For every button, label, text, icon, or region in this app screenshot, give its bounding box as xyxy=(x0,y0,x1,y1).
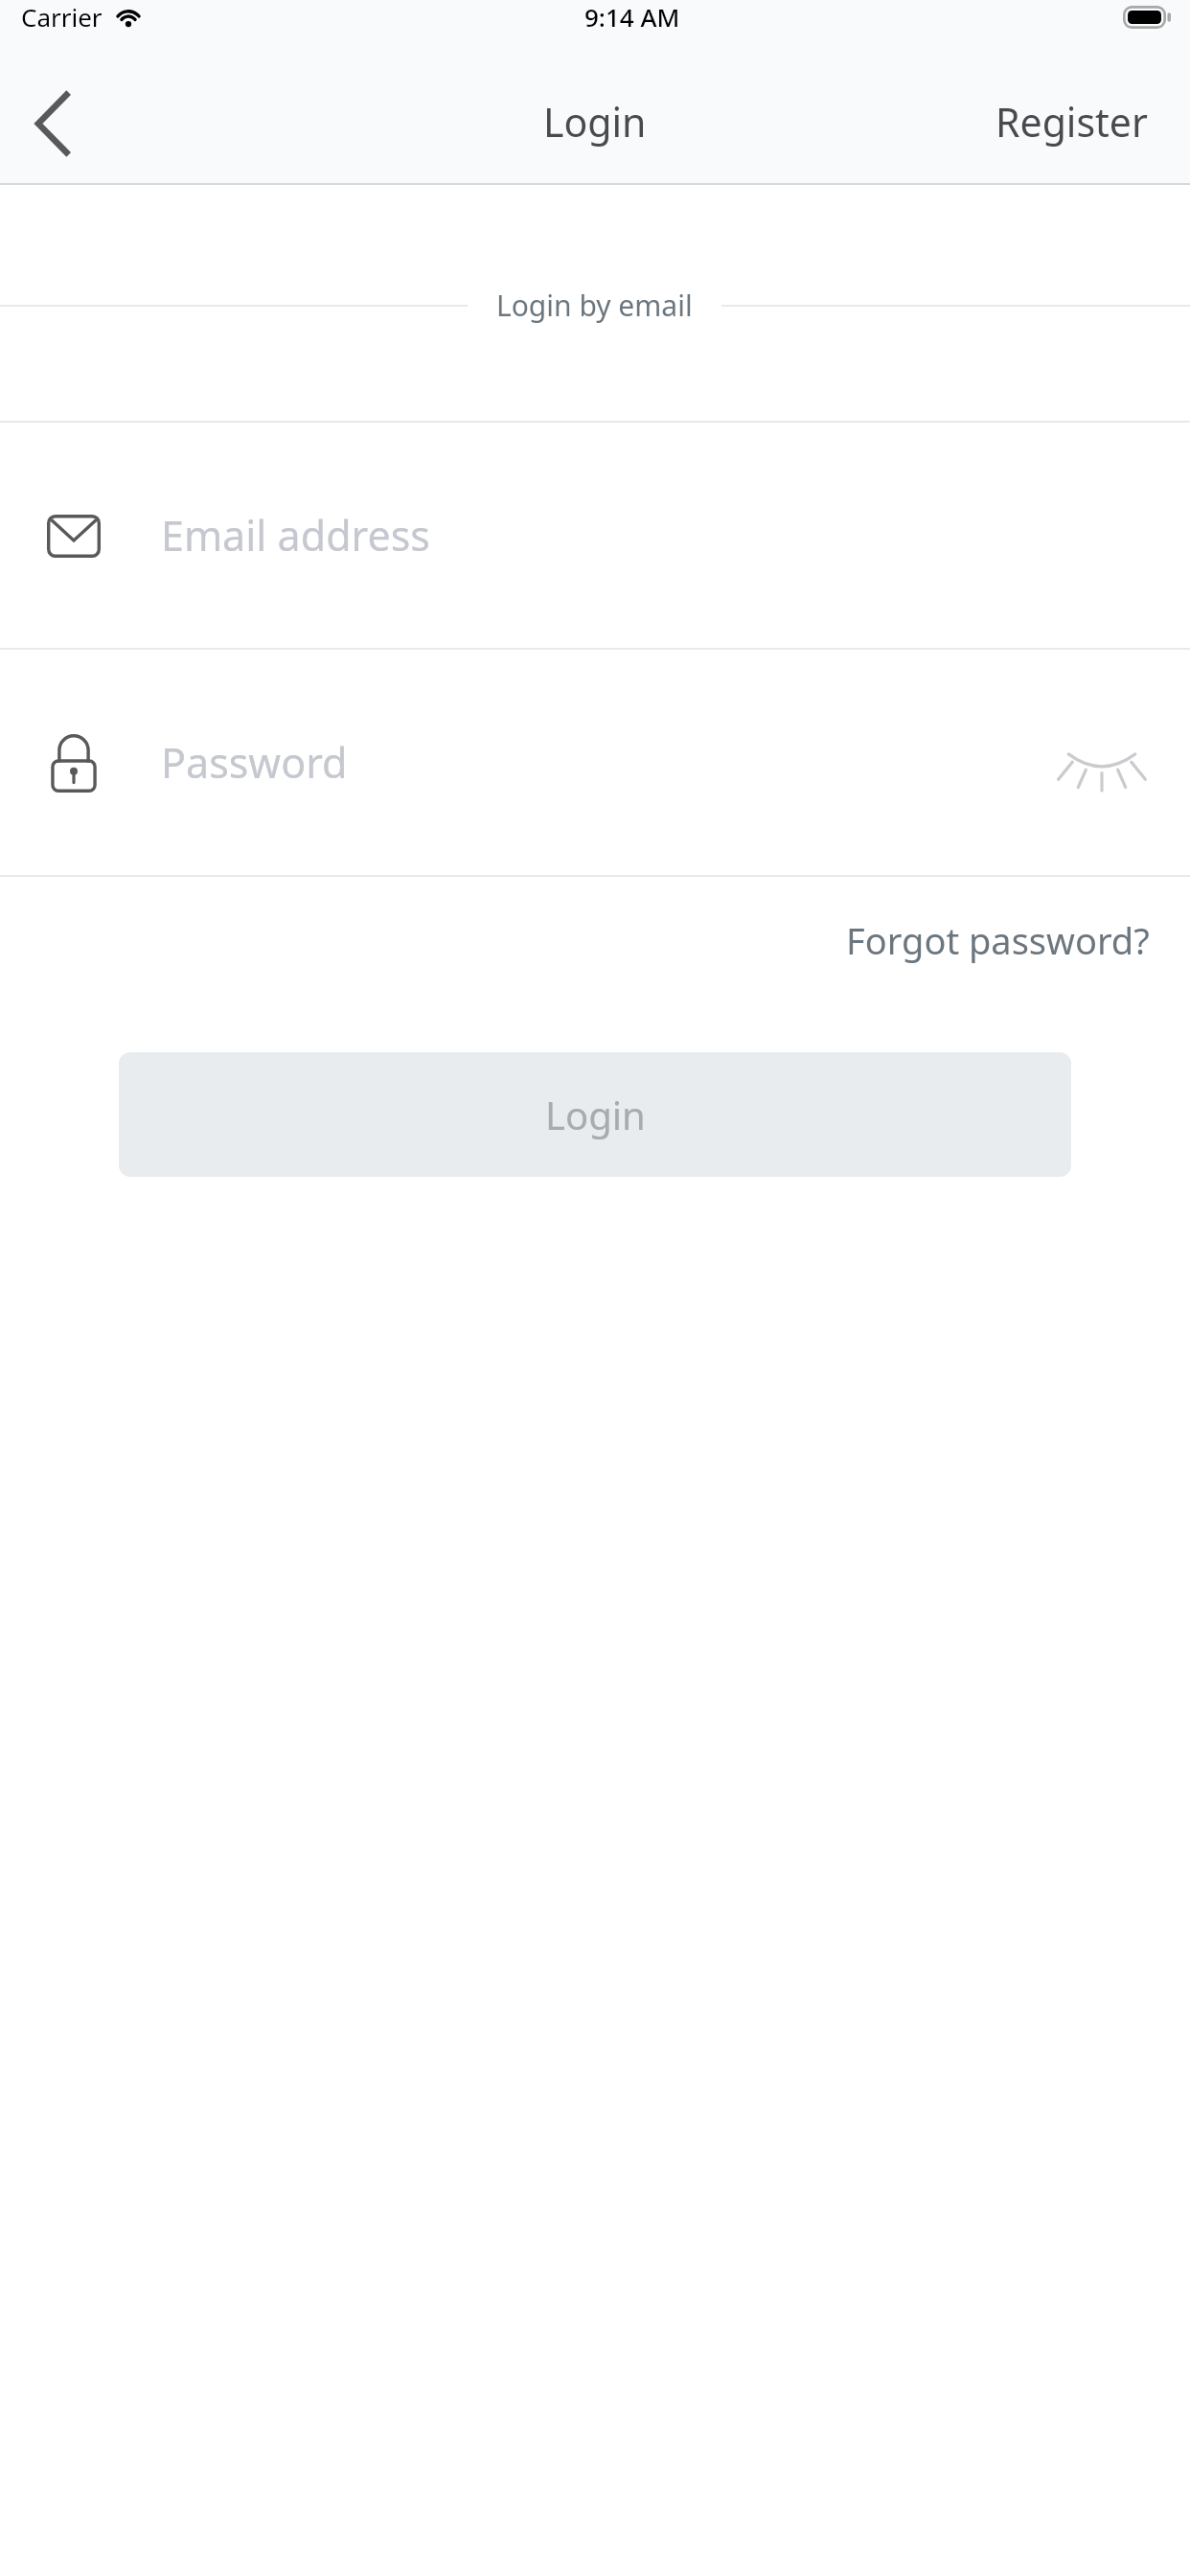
staticText: Login xyxy=(543,95,647,149)
staticText: Register xyxy=(995,95,1148,149)
staticText: Password xyxy=(161,734,348,791)
staticText: Forgot password? xyxy=(846,915,1150,965)
staticText: Login xyxy=(545,1089,646,1140)
staticText: Login by email xyxy=(496,286,693,325)
staticText: 9:14 AM xyxy=(584,0,680,34)
button[interactable]: Show password xyxy=(1056,724,1148,801)
button[interactable]: Email address xyxy=(0,423,1190,648)
button[interactable]: Register xyxy=(967,61,1190,185)
button[interactable]: Login xyxy=(119,1052,1071,1177)
staticText: Carrier xyxy=(21,0,103,34)
button[interactable]: Password xyxy=(0,650,1190,875)
staticText: Email address xyxy=(161,507,430,563)
button[interactable]: Back xyxy=(0,61,105,185)
button[interactable]: Forgot password? xyxy=(833,900,1163,980)
